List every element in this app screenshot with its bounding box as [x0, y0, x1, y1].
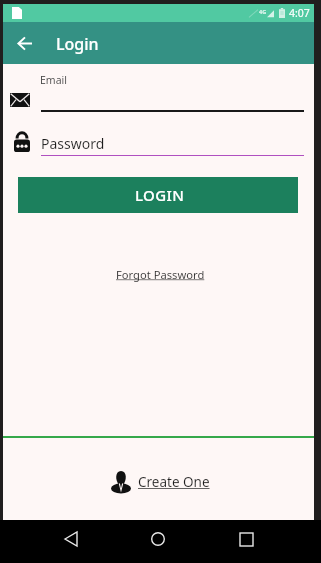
button[interactable]: Recent apps [226, 519, 266, 559]
button[interactable]: Email field [41, 72, 304, 112]
button[interactable]: LOGIN [18, 177, 298, 213]
staticText: 4:07 [289, 6, 310, 20]
staticText: Password [41, 134, 105, 153]
button[interactable]: Password field [41, 132, 304, 157]
staticText: 4G [259, 8, 267, 15]
button[interactable]: Home [138, 519, 178, 559]
staticText: Email [40, 73, 67, 87]
staticText: LOGIN [135, 185, 185, 205]
button[interactable]: Forgot Password [112, 265, 209, 284]
button[interactable]: Create One [111, 469, 210, 495]
staticText: Create One [138, 473, 210, 491]
button[interactable]: Back [9, 27, 41, 59]
staticText: Forgot Password [116, 267, 205, 282]
staticText: Login [56, 33, 99, 55]
button[interactable]: Back [51, 519, 91, 559]
